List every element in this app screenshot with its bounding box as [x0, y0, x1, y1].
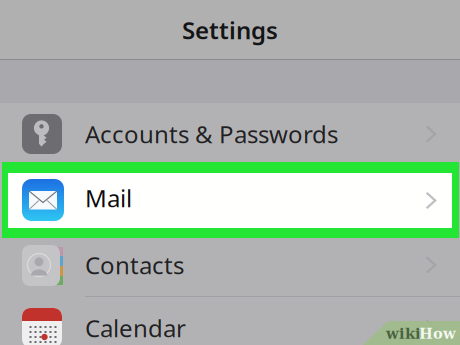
- button[interactable]: Accounts & Passwords: [0, 103, 460, 165]
- staticText: Mail: [85, 182, 132, 214]
- staticText: How: [419, 325, 456, 342]
- staticText: Calendar: [85, 312, 186, 344]
- staticText: wiki: [386, 325, 421, 342]
- staticText: Accounts & Passwords: [85, 118, 338, 150]
- button[interactable]: Settings: [0, 0, 460, 60]
- staticText: Settings: [182, 14, 278, 46]
- button[interactable]: Calendar: [0, 297, 460, 345]
- button[interactable]: Mail: [8, 173, 452, 228]
- staticText: Contacts: [85, 249, 184, 281]
- button[interactable]: Contacts: [0, 234, 460, 296]
